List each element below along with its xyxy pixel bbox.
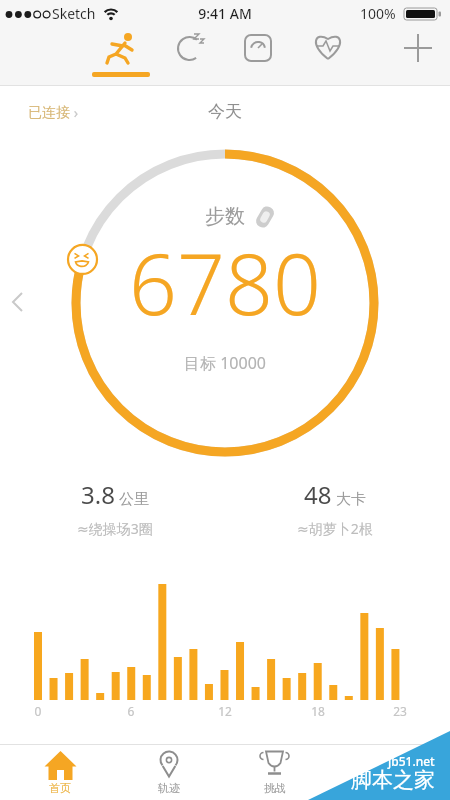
staticText: 挑战 — [240, 781, 310, 795]
staticText: 48 — [304, 478, 332, 511]
staticText: 已连接 — [28, 104, 70, 122]
button[interactable] — [98, 26, 142, 70]
button[interactable] — [306, 26, 350, 70]
staticText: 9:41 AM — [0, 4, 450, 23]
staticText: 今天 — [0, 101, 450, 122]
staticText: 6780 — [0, 225, 450, 339]
staticText: 0 — [23, 703, 53, 719]
staticText: 6 — [116, 703, 146, 719]
staticText: 步数 — [0, 204, 450, 229]
staticText: Sketch — [52, 4, 96, 23]
button[interactable]: 轨迹 — [134, 748, 204, 798]
staticText: › — [70, 103, 78, 122]
staticText: 23 — [385, 703, 415, 719]
staticText: 公里 — [115, 488, 149, 508]
staticText: 脚本之家 — [351, 767, 435, 793]
staticText: 大卡 — [332, 488, 366, 508]
staticText: 12 — [210, 703, 240, 719]
staticText: 目标 10000 — [0, 352, 450, 374]
staticText: jb51.net — [388, 753, 435, 769]
button[interactable] — [236, 26, 280, 70]
staticText: 100% — [360, 4, 396, 23]
staticText: 轨迹 — [134, 781, 204, 795]
staticText: 18 — [303, 703, 333, 719]
button[interactable]: 挑战 — [240, 748, 310, 798]
staticText: 首页 — [25, 781, 95, 795]
button[interactable]: 首页 — [25, 748, 95, 798]
staticText: ≈胡萝卜2根 — [297, 519, 373, 538]
button[interactable] — [396, 26, 440, 70]
staticText: 3.8 — [81, 478, 115, 511]
button[interactable] — [168, 26, 212, 70]
staticText: ≈绕操场3圈 — [77, 519, 153, 538]
button[interactable]: 已连接 — [28, 103, 78, 122]
